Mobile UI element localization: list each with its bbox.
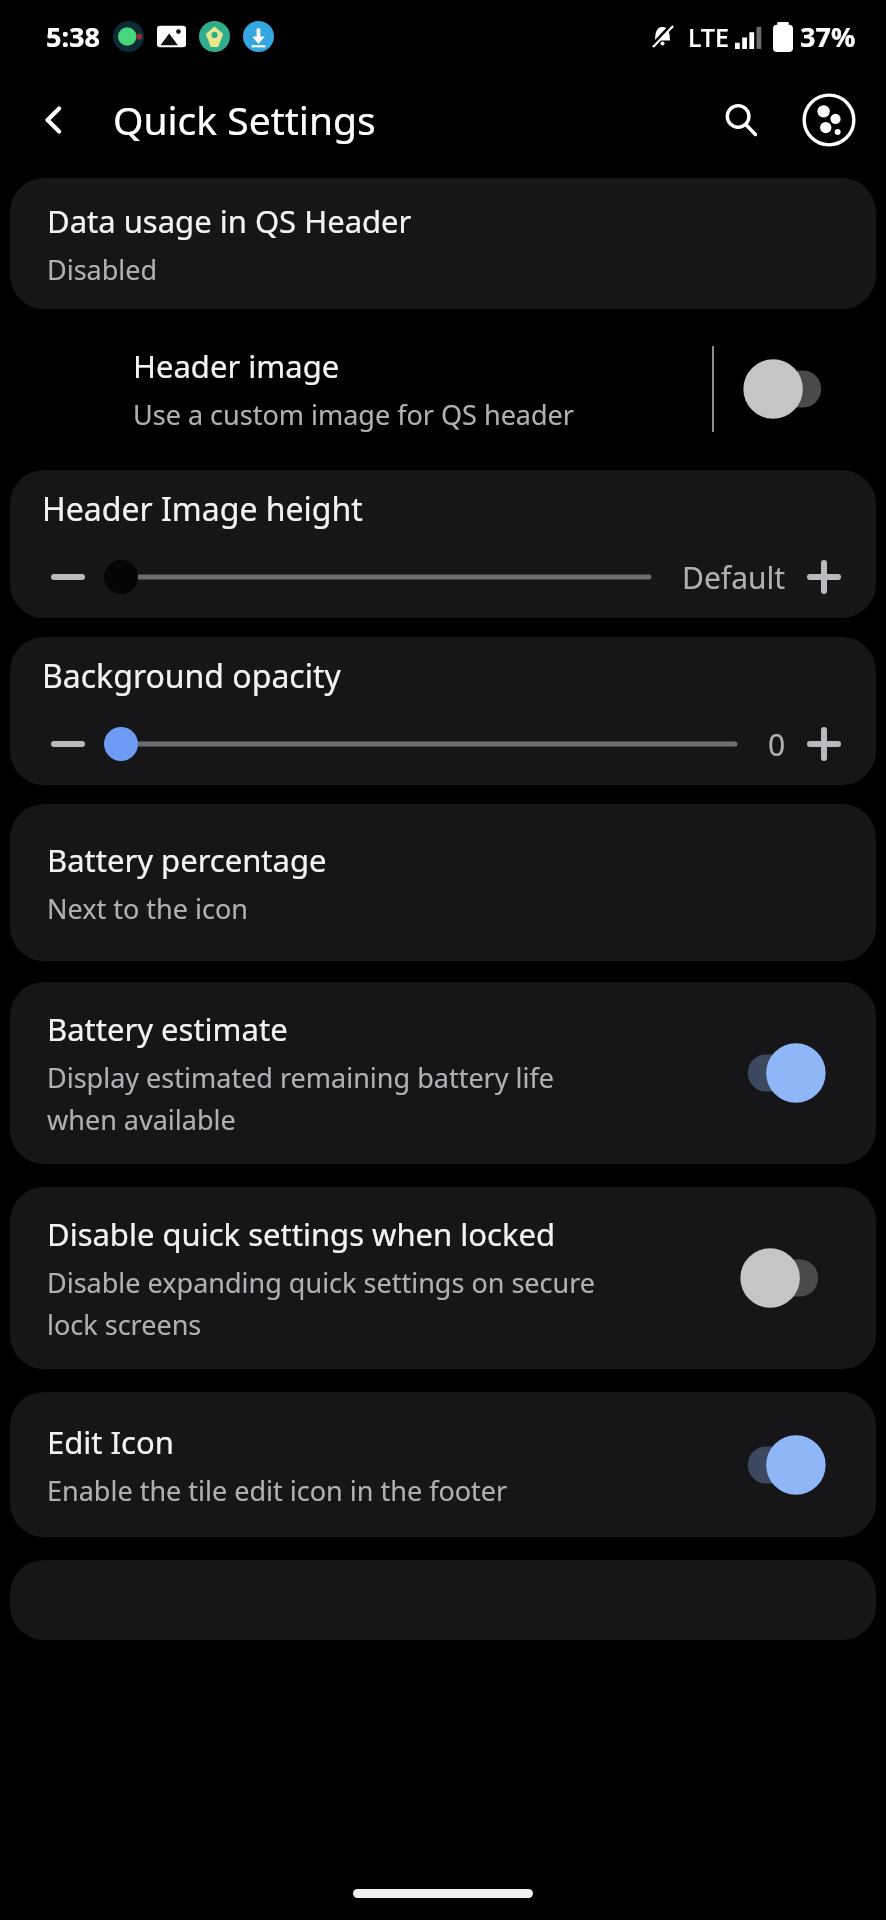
button[interactable]: Header image <box>0 330 886 448</box>
staticText: Data usage in QS Header <box>47 200 412 242</box>
button[interactable]: Background opacity <box>10 637 876 785</box>
button[interactable]: Header image toggle <box>734 349 838 429</box>
button[interactable]: Edit Icon toggle <box>728 1423 838 1507</box>
staticText: lock screens <box>47 1306 202 1343</box>
staticText: Header Image height <box>42 487 363 531</box>
button[interactable]: Search <box>711 90 771 150</box>
button[interactable]: Back <box>28 94 80 146</box>
button[interactable]: Battery estimate toggle <box>728 1031 838 1115</box>
staticText: when available <box>47 1101 236 1138</box>
staticText: Disable expanding quick settings on secu… <box>47 1264 596 1301</box>
button[interactable]: Decrease <box>42 555 94 599</box>
staticText: Display estimated remaining battery life <box>47 1059 555 1096</box>
staticText: Quick Settings <box>113 93 376 146</box>
staticText: Disabled <box>47 251 158 288</box>
staticText: Disable quick settings when locked <box>47 1213 555 1255</box>
button[interactable]: Edit Icon <box>10 1392 876 1537</box>
staticText: Header image <box>133 345 340 387</box>
staticText: Battery estimate <box>47 1008 288 1050</box>
button[interactable]: Header Image height <box>10 470 876 618</box>
staticText: Battery percentage <box>47 839 327 881</box>
staticText: 37% <box>800 18 856 55</box>
staticText: Use a custom image for QS header <box>133 396 574 433</box>
staticText: LTE <box>688 20 729 54</box>
button[interactable]: Increase <box>800 553 848 601</box>
staticText: Edit Icon <box>47 1421 174 1463</box>
staticText: Enable the tile edit icon in the footer <box>47 1472 508 1509</box>
staticText: Background opacity <box>42 654 341 698</box>
staticText: 0 <box>768 724 786 765</box>
button[interactable]: App logo <box>798 89 860 151</box>
button[interactable]: Disable quick settings when locked <box>10 1187 876 1369</box>
button[interactable] <box>104 555 666 599</box>
button[interactable]: Increase <box>800 720 848 768</box>
button[interactable] <box>104 722 752 766</box>
button[interactable]: Decrease <box>42 722 94 766</box>
staticText: Next to the icon <box>47 890 248 927</box>
staticText: Default <box>682 557 786 598</box>
button[interactable]: Disable quick settings when locked toggl… <box>728 1236 838 1320</box>
button[interactable]: Battery percentage <box>10 804 876 961</box>
staticText: 5:38 <box>46 18 100 55</box>
button[interactable]: Battery estimate <box>10 982 876 1164</box>
button[interactable]: Data usage in QS Header <box>10 178 876 309</box>
